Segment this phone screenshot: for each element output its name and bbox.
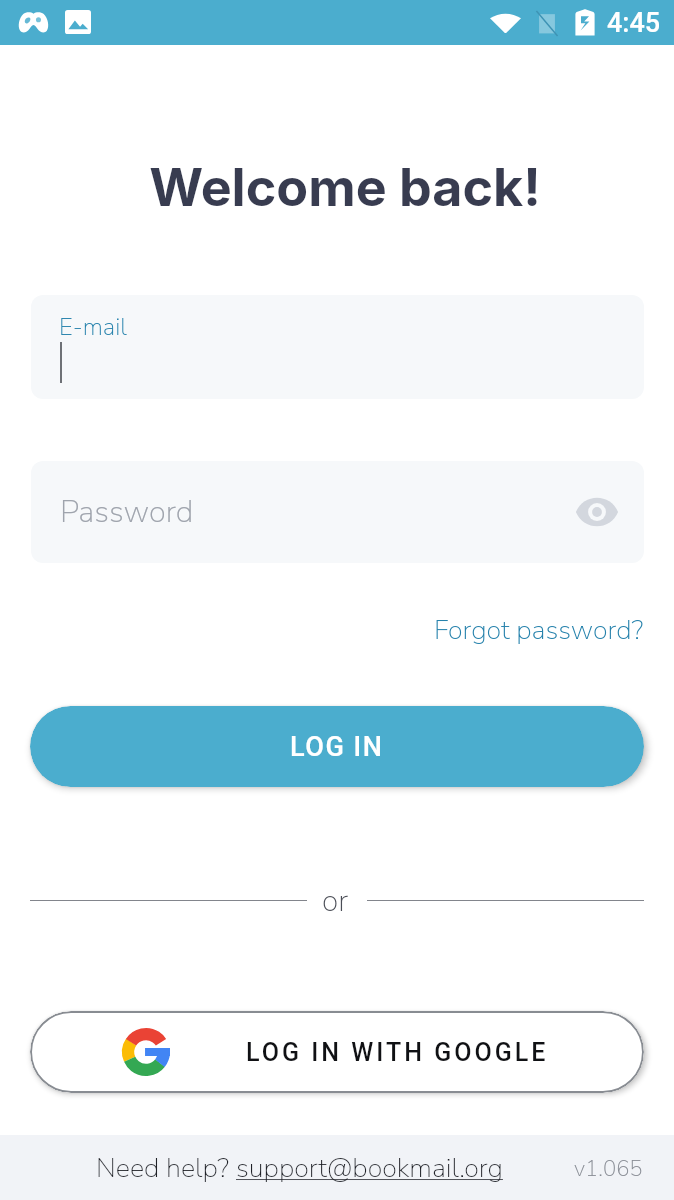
staticText: 4:45 bbox=[607, 7, 661, 39]
staticText: Password bbox=[60, 491, 194, 533]
button[interactable]: Password bbox=[31, 461, 644, 563]
other: Games bbox=[18, 11, 49, 33]
button[interactable]: LOG IN WITH GOOGLE bbox=[30, 1011, 644, 1093]
staticText: E-mail bbox=[59, 311, 127, 344]
staticText: or bbox=[322, 881, 348, 922]
other: Screenshot bbox=[65, 10, 91, 34]
button[interactable]: support@bookmail.org bbox=[236, 1150, 503, 1187]
button[interactable]: LOG IN bbox=[30, 706, 644, 787]
button[interactable]: Forgot password? bbox=[434, 612, 644, 649]
staticText: Need help? bbox=[96, 1150, 236, 1187]
staticText: LOG IN bbox=[290, 731, 384, 763]
staticText: Welcome back! bbox=[8, 156, 674, 219]
button[interactable]: Show password bbox=[571, 486, 623, 538]
staticText: LOG IN WITH GOOGLE bbox=[246, 1038, 549, 1067]
button[interactable]: E-mail bbox=[31, 295, 644, 399]
staticText: v1.065 bbox=[574, 1154, 643, 1184]
staticText: Forgot password? bbox=[434, 612, 644, 649]
